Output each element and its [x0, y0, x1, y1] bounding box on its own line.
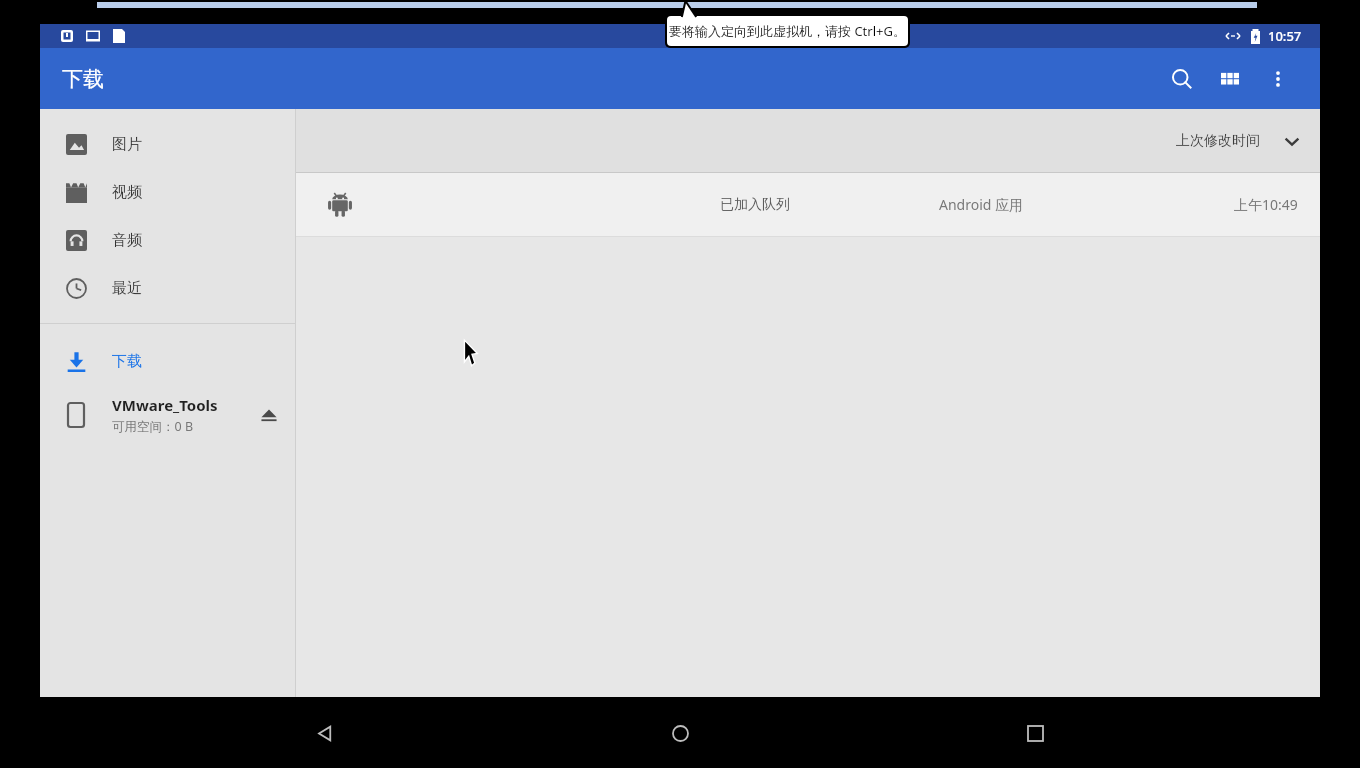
- button[interactable]: 下载: [40, 337, 295, 385]
- staticText: 图片: [112, 135, 142, 154]
- staticText: Android 应用: [939, 195, 1024, 214]
- button[interactable]: Home: [650, 703, 710, 763]
- staticText: 要将输入定向到此虚拟机，请按 Ctrl+G。: [669, 22, 906, 40]
- button[interactable]: 最近: [40, 264, 295, 312]
- staticText: 10:57: [1268, 27, 1302, 45]
- button[interactable]: Back: [295, 703, 355, 763]
- button[interactable]: Recent apps: [1005, 703, 1065, 763]
- button[interactable]: 图片: [40, 120, 295, 168]
- staticText: VMware_Tools: [112, 395, 218, 415]
- staticText: 下载: [62, 66, 104, 92]
- staticText: 最近: [112, 279, 142, 298]
- staticText: 可用空间：0 B: [112, 418, 194, 435]
- staticText: 上午10:49: [1234, 195, 1298, 214]
- button[interactable]: VMware_Tools: [40, 385, 295, 445]
- staticText: 已加入队列: [720, 196, 790, 214]
- staticText: 视频: [112, 183, 142, 202]
- staticText: 音频: [112, 231, 142, 250]
- button[interactable]: More options: [1254, 55, 1302, 103]
- button[interactable]: 视频: [40, 168, 295, 216]
- button[interactable]: 音频: [40, 216, 295, 264]
- button[interactable]: Eject: [243, 389, 295, 441]
- staticText: 下载: [112, 352, 142, 371]
- staticText: 上次修改时间: [1176, 132, 1260, 150]
- button[interactable]: 上次修改时间: [1176, 132, 1300, 150]
- button[interactable]: Search: [1158, 55, 1206, 103]
- button[interactable]: 已加入队列: [296, 173, 1320, 236]
- button[interactable]: Grid view: [1206, 55, 1254, 103]
